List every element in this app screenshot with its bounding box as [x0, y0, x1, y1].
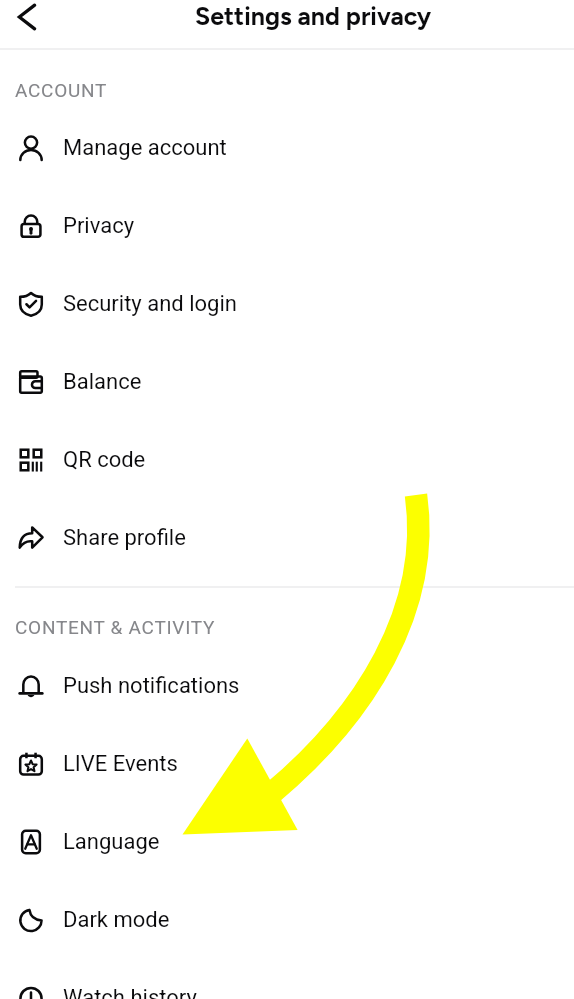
button[interactable]: Share profile: [0, 499, 574, 577]
staticText: Security and login: [63, 291, 237, 317]
staticText: Language: [63, 829, 160, 855]
staticText: ACCOUNT: [15, 79, 108, 101]
staticText: Settings and privacy: [195, 1, 432, 31]
button[interactable]: QR code: [0, 421, 574, 499]
staticText: QR code: [63, 447, 146, 473]
button[interactable]: Back: [6, 0, 47, 37]
staticText: Share profile: [63, 525, 186, 551]
button[interactable]: Language: [0, 803, 574, 881]
button[interactable]: Security and login: [0, 265, 574, 343]
staticText: Dark mode: [63, 907, 170, 933]
staticText: CONTENT & ACTIVITY: [15, 616, 216, 638]
button[interactable]: Manage account: [0, 109, 574, 187]
button[interactable]: Dark mode: [0, 881, 574, 959]
staticText: Push notifications: [63, 673, 240, 699]
button[interactable]: Privacy: [0, 187, 574, 265]
button[interactable]: Push notifications: [0, 647, 574, 725]
staticText: LIVE Events: [63, 751, 178, 777]
button[interactable]: Watch history: [0, 959, 574, 999]
staticText: Privacy: [63, 213, 135, 239]
staticText: Watch history: [63, 985, 197, 999]
staticText: Manage account: [63, 135, 227, 161]
button[interactable]: Balance: [0, 343, 574, 421]
button[interactable]: LIVE Events: [0, 725, 574, 803]
staticText: Balance: [63, 369, 142, 395]
